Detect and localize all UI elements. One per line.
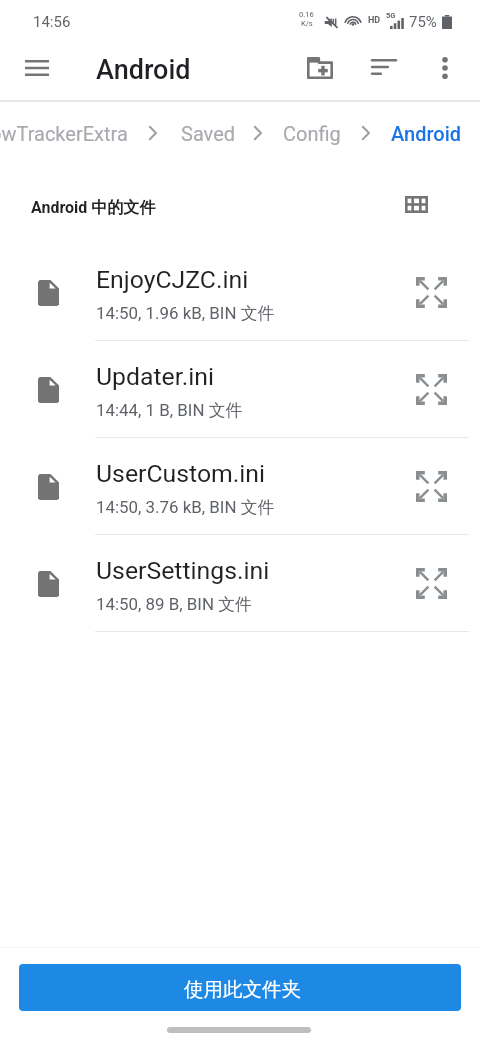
staticText: Updater.ini	[96, 362, 214, 391]
staticText: Android	[391, 122, 462, 145]
button[interactable]: UserCustom.ini	[0, 438, 480, 535]
button[interactable]: Saved	[178, 122, 239, 145]
staticText: 0.16	[299, 10, 314, 19]
button[interactable]: Open	[416, 277, 447, 308]
staticText: 14:50, 1.96 kB, BIN 文件	[96, 303, 275, 324]
staticText: 5G	[386, 11, 396, 20]
staticText: Saved	[181, 122, 236, 145]
button[interactable]: Android	[388, 122, 465, 145]
staticText: Android 中的文件	[31, 198, 156, 218]
button[interactable]: Sort	[360, 43, 408, 91]
button[interactable]: Open	[416, 374, 447, 405]
button[interactable]: Open	[416, 568, 447, 599]
button[interactable]: 使用此文件夹	[19, 964, 461, 1011]
button[interactable]: Config	[280, 122, 344, 145]
staticText: Android	[96, 54, 191, 86]
staticText: UserCustom.ini	[96, 459, 266, 488]
staticText: K/s	[301, 19, 313, 28]
staticText: owTrackerExtra	[0, 122, 128, 145]
button[interactable]: Open	[416, 471, 447, 502]
button[interactable]: More options	[421, 44, 469, 92]
button[interactable]: Create new folder	[296, 44, 344, 92]
staticText: 14:50, 89 B, BIN 文件	[96, 594, 252, 615]
staticText: UserSettings.ini	[96, 556, 270, 585]
staticText: HD	[368, 15, 381, 26]
button[interactable]: UserSettings.ini	[0, 535, 480, 632]
staticText: 14:50, 3.76 kB, BIN 文件	[96, 497, 275, 518]
staticText: 14:56	[33, 13, 71, 31]
button[interactable]: EnjoyCJZC.ini	[0, 244, 480, 341]
staticText: Config	[283, 122, 341, 145]
button[interactable]: Navigation menu	[13, 44, 61, 92]
staticText: 使用此文件夹	[184, 977, 301, 1002]
button[interactable]: owTrackerExtra	[0, 122, 131, 145]
button[interactable]: Updater.ini	[0, 341, 480, 438]
staticText: 14:44, 1 B, BIN 文件	[96, 400, 243, 421]
button[interactable]: Grid view	[396, 184, 436, 224]
staticText: EnjoyCJZC.ini	[96, 265, 249, 294]
staticText: 75%	[409, 13, 437, 31]
